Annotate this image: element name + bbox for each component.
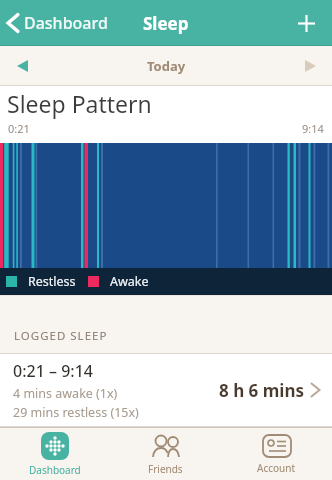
- staticText: 0:21 – 9:14: [13, 360, 93, 382]
- button[interactable]: [298, 54, 322, 78]
- staticText: Today: [147, 57, 186, 75]
- staticText: 9:14: [302, 121, 324, 136]
- staticText: Friends: [148, 462, 183, 476]
- button[interactable]: Account: [221, 428, 332, 480]
- staticText: Dashboard: [24, 12, 108, 34]
- button[interactable]: Dashboard: [0, 428, 110, 480]
- staticText: 29 mins restless (15x): [13, 404, 139, 421]
- button[interactable]: Dashboard: [0, 12, 108, 34]
- button[interactable]: [10, 54, 34, 78]
- button[interactable]: [294, 11, 318, 35]
- staticText: Sleep: [143, 12, 189, 35]
- staticText: 4 mins awake (1x): [13, 385, 118, 402]
- staticText: Sleep Pattern: [7, 88, 152, 119]
- button[interactable]: Friends: [110, 428, 221, 480]
- staticText: 0:21: [8, 121, 30, 136]
- staticText: Awake: [110, 273, 149, 290]
- staticText: Account: [257, 461, 296, 475]
- staticText: Restless: [28, 273, 76, 290]
- staticText: LOGGED SLEEP: [14, 328, 108, 344]
- button[interactable]: 0:21 – 9:14: [0, 354, 332, 426]
- staticText: Dashboard: [29, 463, 81, 477]
- staticText: 8 h 6 mins: [219, 379, 304, 402]
